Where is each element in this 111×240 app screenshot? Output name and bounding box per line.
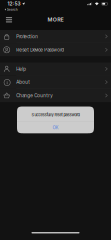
button[interactable]: Help bbox=[0, 62, 111, 76]
staticText: MORE bbox=[47, 16, 63, 23]
staticText: Protection bbox=[16, 33, 38, 39]
staticText: OK bbox=[52, 125, 58, 130]
staticText: Change Country bbox=[16, 93, 52, 98]
button[interactable]: Search bbox=[0, 7, 20, 12]
staticText: About bbox=[16, 79, 30, 85]
staticText: Help bbox=[16, 66, 26, 72]
button[interactable]: Change Country bbox=[0, 89, 111, 102]
button[interactable]: Menu bbox=[2, 13, 16, 29]
button[interactable]: Reset Device Password bbox=[0, 43, 111, 56]
staticText: Search bbox=[7, 8, 18, 11]
staticText: 12:53 bbox=[7, 1, 20, 7]
button[interactable]: Protection bbox=[0, 30, 111, 43]
staticText: Reset Device Password bbox=[16, 47, 64, 53]
staticText: Successfully reset password bbox=[31, 112, 79, 117]
button[interactable]: About bbox=[0, 76, 111, 89]
button[interactable]: OK bbox=[17, 122, 94, 133]
